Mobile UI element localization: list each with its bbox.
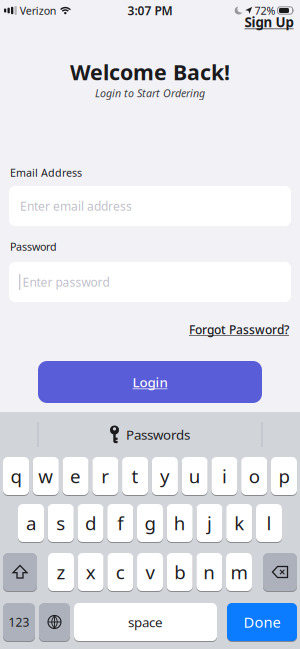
staticText: Password xyxy=(10,239,57,254)
button[interactable]: o xyxy=(241,457,267,495)
staticText: b xyxy=(174,560,185,584)
button[interactable]: Sign Up xyxy=(244,13,293,31)
staticText: Verizon xyxy=(20,3,57,18)
staticText: f xyxy=(117,511,123,535)
staticText: Welcome Back! xyxy=(70,58,230,86)
staticText: r xyxy=(101,464,109,488)
button[interactable]: Passwords xyxy=(0,412,300,457)
staticText: l xyxy=(266,511,271,535)
staticText: v xyxy=(145,560,154,584)
button[interactable]: f xyxy=(107,504,133,542)
button[interactable]: n xyxy=(196,553,222,591)
button[interactable]: Numbers xyxy=(3,603,35,641)
button[interactable]: Forgot Password? xyxy=(189,321,289,337)
button[interactable]: Delete xyxy=(263,553,297,591)
button[interactable]: Enter email address xyxy=(9,186,291,226)
staticText: x xyxy=(86,560,96,584)
button[interactable]: l xyxy=(256,504,282,542)
button[interactable]: e xyxy=(62,457,89,495)
staticText: s xyxy=(56,511,65,535)
staticText: Enter password xyxy=(22,274,109,290)
button[interactable]: z xyxy=(48,553,74,591)
button[interactable]: w xyxy=(33,457,59,495)
staticText: w xyxy=(38,464,53,488)
button[interactable]: k xyxy=(226,504,252,542)
staticText: Done xyxy=(243,612,280,632)
button[interactable]: t xyxy=(122,457,148,495)
button[interactable]: d xyxy=(77,504,103,542)
staticText: t xyxy=(132,464,139,488)
button[interactable]: j xyxy=(196,504,222,542)
button[interactable]: Enter password xyxy=(9,262,291,302)
staticText: a xyxy=(26,511,36,535)
button[interactable]: q xyxy=(3,457,29,495)
staticText: z xyxy=(56,560,65,584)
button[interactable]: i xyxy=(211,457,237,495)
button[interactable]: r xyxy=(92,457,118,495)
staticText: m xyxy=(230,560,247,584)
staticText: g xyxy=(144,511,155,535)
staticText: d xyxy=(85,511,96,535)
button[interactable]: m xyxy=(226,553,252,591)
staticText: Email Address xyxy=(10,165,82,180)
staticText: q xyxy=(10,464,21,488)
staticText: e xyxy=(70,464,81,488)
staticText: 3:07 PM xyxy=(127,2,172,18)
button[interactable]: v xyxy=(137,553,163,591)
staticText: 72% xyxy=(255,3,276,18)
staticText: y xyxy=(160,464,170,488)
staticText: Login to Start Ordering xyxy=(95,86,205,100)
button[interactable]: Done xyxy=(227,603,297,641)
button[interactable]: Next keyboard xyxy=(39,603,70,641)
staticText: 123 xyxy=(8,614,29,630)
staticText: Login xyxy=(132,373,167,391)
button[interactable]: a xyxy=(18,504,44,542)
staticText: h xyxy=(174,511,186,535)
button[interactable]: Login xyxy=(38,361,262,403)
staticText: k xyxy=(234,511,244,535)
button[interactable]: h xyxy=(167,504,193,542)
staticText: Sign Up xyxy=(244,13,293,31)
button[interactable]: space xyxy=(74,603,217,641)
staticText: Passwords xyxy=(126,426,190,443)
staticText: c xyxy=(116,560,125,584)
button[interactable]: u xyxy=(182,457,208,495)
button[interactable]: p xyxy=(271,457,297,495)
staticText: p xyxy=(278,464,289,488)
staticText: Enter email address xyxy=(20,198,132,214)
staticText: i xyxy=(222,464,227,488)
button[interactable]: b xyxy=(167,553,193,591)
staticText: u xyxy=(189,464,201,488)
button[interactable]: g xyxy=(137,504,163,542)
staticText: Forgot Password? xyxy=(189,321,289,337)
staticText: o xyxy=(249,464,260,488)
button[interactable]: s xyxy=(48,504,74,542)
button[interactable]: y xyxy=(152,457,178,495)
staticText: space xyxy=(128,613,163,631)
button[interactable]: Shift xyxy=(3,553,37,591)
staticText: j xyxy=(207,511,212,535)
button[interactable]: c xyxy=(107,553,133,591)
button[interactable]: x xyxy=(78,553,104,591)
staticText: n xyxy=(203,560,215,584)
